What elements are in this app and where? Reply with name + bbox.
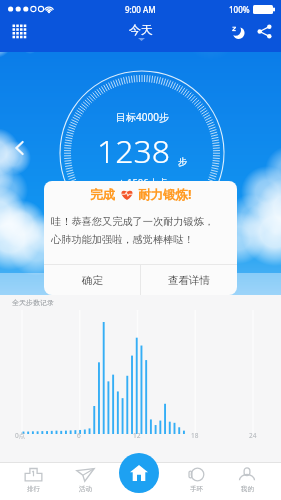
staticText: 耐力锻炼! [138, 186, 192, 203]
staticText: 确定 [82, 274, 103, 287]
staticText: 完成 [90, 187, 115, 203]
staticText: 24 [249, 431, 257, 440]
staticText: 9:00 AM [125, 4, 156, 15]
staticText: 查看详情 [168, 274, 210, 287]
staticText: 我的 [241, 485, 254, 493]
staticText: 手环 [190, 485, 203, 493]
button[interactable]: 确定 [44, 265, 140, 295]
staticText: 今天 [129, 22, 153, 37]
staticText: 排行 [27, 485, 40, 493]
button[interactable]: 排行 [12, 464, 54, 498]
staticText: 100% [229, 4, 250, 15]
staticText: 全天步数记录 [12, 298, 54, 307]
button[interactable]: Share [251, 18, 278, 45]
staticText: 步 [178, 156, 188, 168]
staticText: 哇！恭喜您又完成了一次耐力锻炼， [51, 215, 214, 228]
staticText: 目标4000步 [116, 110, 169, 124]
button[interactable]: 我的 [226, 464, 268, 498]
button[interactable]: 活动 [64, 464, 106, 498]
button[interactable]: Sleep mode [224, 18, 251, 45]
staticText: 12 [133, 431, 141, 440]
button[interactable]: 手环 [175, 464, 217, 498]
button[interactable]: Calendar [5, 17, 33, 45]
staticText: 0点 [15, 431, 26, 440]
button[interactable]: Previous day [6, 134, 34, 162]
staticText: 心肺功能加强啦，感觉棒棒哒！ [51, 233, 194, 246]
staticText: 18 [191, 431, 199, 440]
staticText: 1238 [97, 129, 171, 173]
button[interactable]: Home [119, 453, 159, 493]
button[interactable]: 查看详情 [141, 265, 237, 295]
button[interactable]: 今天 [129, 22, 153, 41]
staticText: 活动 [79, 485, 92, 493]
staticText: 6 [77, 431, 81, 440]
staticText: 1506大卡 [127, 176, 168, 189]
